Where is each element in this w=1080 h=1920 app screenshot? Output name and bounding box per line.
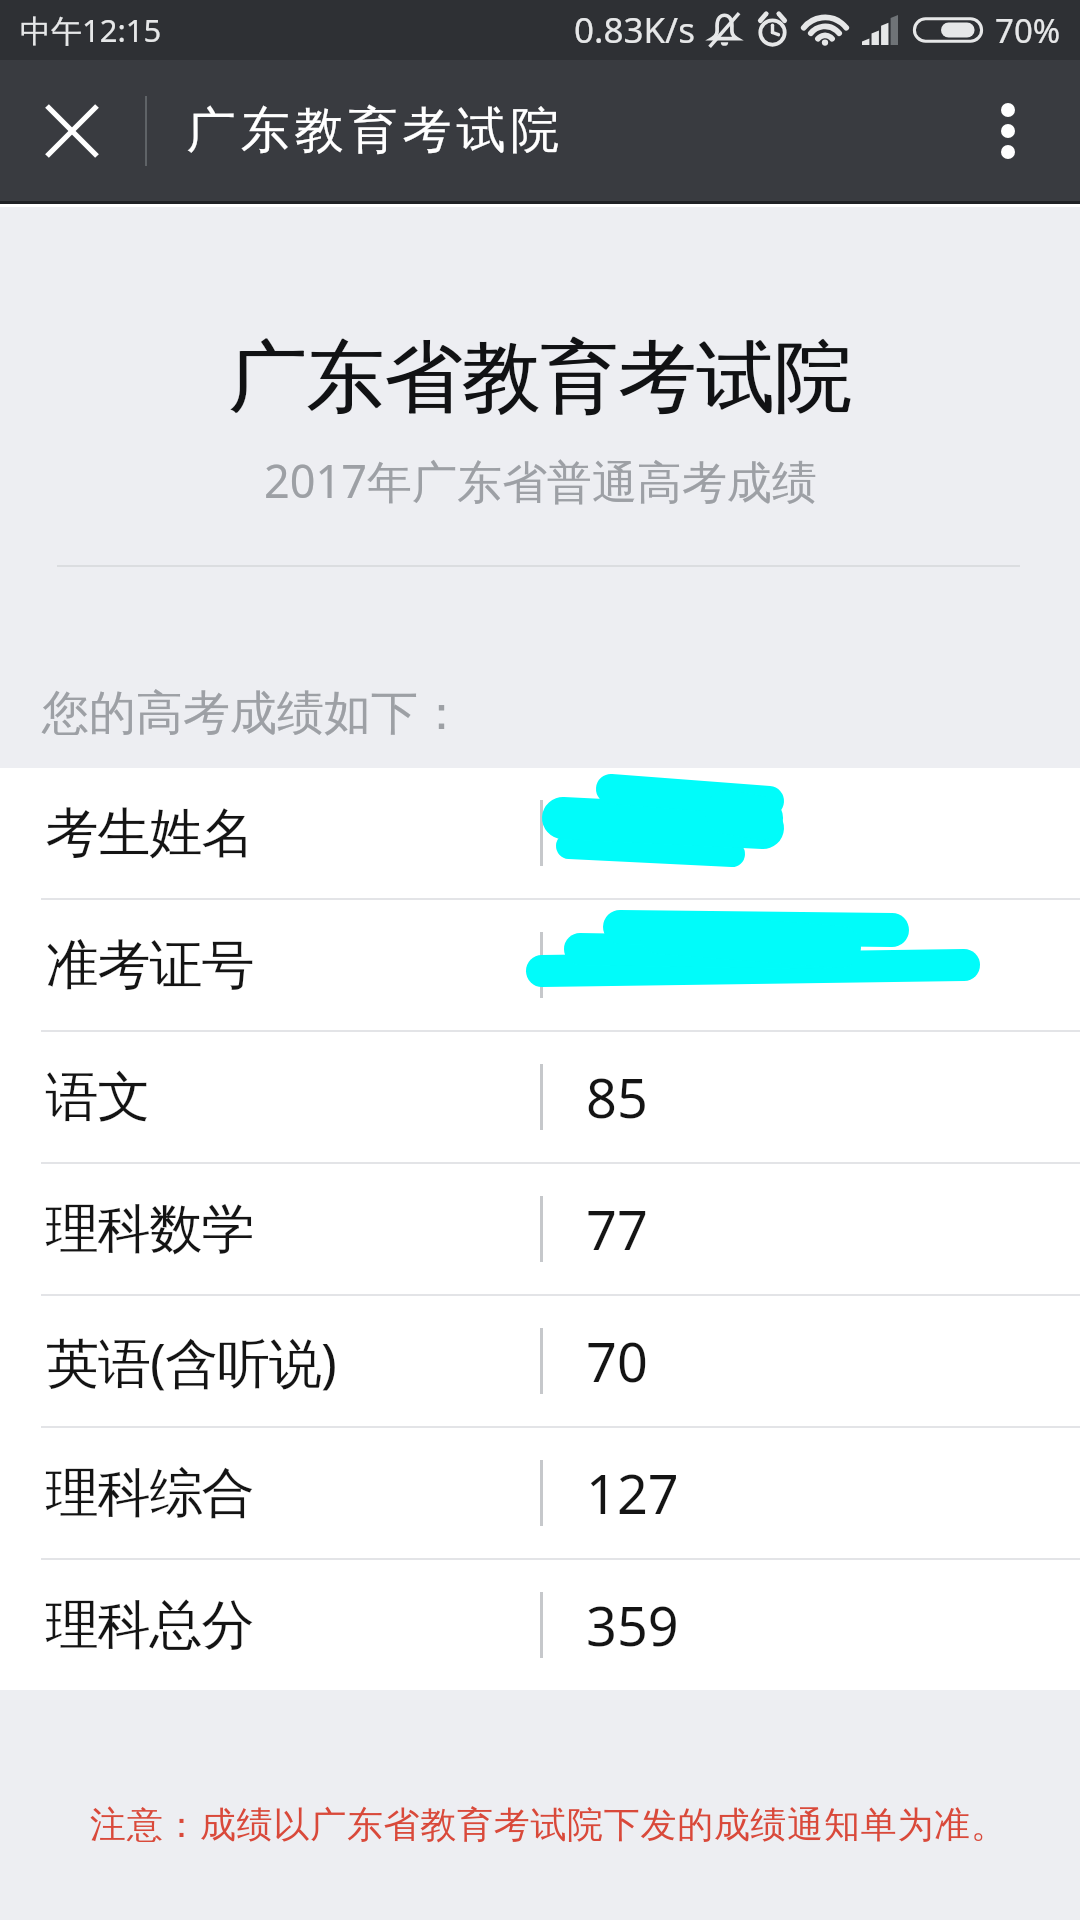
- staticText: 您的高考成绩如下：: [42, 684, 465, 743]
- staticText: 127: [586, 1456, 679, 1530]
- button[interactable]: Close: [23, 82, 121, 180]
- staticText: 70: [586, 1324, 648, 1398]
- staticText: 359: [586, 1588, 679, 1662]
- staticText: 考生姓名: [46, 800, 254, 867]
- staticText: 理科综合: [46, 1460, 254, 1527]
- staticText: 理科数学: [46, 1196, 254, 1263]
- staticText: 中午12:15: [20, 9, 162, 51]
- staticText: 语文: [46, 1064, 150, 1131]
- button[interactable]: 英语(含听说): [0, 1296, 1080, 1426]
- button[interactable]: 理科综合: [0, 1428, 1080, 1558]
- staticText: 广东省教育考试院: [228, 329, 852, 427]
- staticText: 85: [586, 1060, 648, 1134]
- button[interactable]: More options: [959, 82, 1057, 180]
- staticText: 理科总分: [46, 1592, 254, 1659]
- button[interactable]: 理科数学: [0, 1164, 1080, 1294]
- staticText: 0.83K/s: [574, 6, 695, 54]
- button[interactable]: 准考证号: [0, 900, 1080, 1030]
- button[interactable]: 语文: [0, 1032, 1080, 1162]
- button[interactable]: 考生姓名: [0, 768, 1080, 898]
- staticText: 英语(含听说): [46, 1325, 336, 1397]
- staticText: 广东教育考试院: [184, 100, 562, 162]
- staticText: 广东省教育考试院: [229, 329, 853, 427]
- button[interactable]: 理科总分: [0, 1560, 1080, 1690]
- staticText: 2017年广东省普通高考成绩: [264, 450, 817, 511]
- staticText: 准考证号: [46, 932, 254, 999]
- staticText: 77: [586, 1192, 648, 1266]
- staticText: 70%: [995, 8, 1061, 53]
- staticText: 注意：成绩以广东省教育考试院下发的成绩通知单为准。: [90, 1802, 1008, 1847]
